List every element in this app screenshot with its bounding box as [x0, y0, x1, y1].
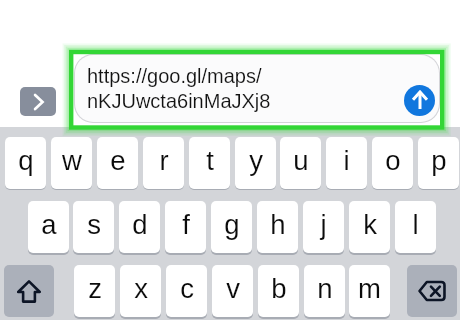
- staticText: n: [317, 273, 333, 304]
- staticText: s: [87, 209, 101, 240]
- staticText: d: [132, 209, 148, 240]
- staticText: i: [343, 145, 350, 176]
- button[interactable]: y: [235, 137, 276, 189]
- staticText: q: [18, 145, 34, 176]
- staticText: v: [226, 273, 240, 304]
- staticText: f: [182, 209, 190, 240]
- button[interactable]: r: [143, 137, 184, 189]
- button[interactable]: j: [303, 201, 344, 253]
- button[interactable]: o: [372, 137, 413, 189]
- staticText: e: [110, 145, 126, 176]
- staticText: k: [363, 209, 377, 240]
- button[interactable]: h: [257, 201, 298, 253]
- button[interactable]: g: [211, 201, 252, 253]
- button[interactable]: a: [28, 201, 69, 253]
- staticText: https://goo.gl/maps/ nKJUwcta6inMaJXj8: [87, 65, 271, 113]
- button[interactable]: z: [74, 265, 115, 317]
- button[interactable]: q: [5, 137, 46, 189]
- staticText: a: [41, 209, 57, 240]
- staticText: h: [270, 209, 286, 240]
- button[interactable]: s: [73, 201, 114, 253]
- button[interactable]: e: [97, 137, 138, 189]
- staticText: l: [412, 209, 419, 240]
- button[interactable]: x: [120, 265, 161, 317]
- staticText: u: [293, 145, 309, 176]
- staticText: m: [358, 273, 381, 304]
- staticText: c: [180, 273, 194, 304]
- staticText: w: [62, 145, 82, 176]
- button[interactable]: l: [395, 201, 436, 253]
- button[interactable]: n: [304, 265, 345, 317]
- button[interactable]: f: [165, 201, 206, 253]
- button[interactable]: m: [349, 265, 390, 317]
- staticText: j: [320, 209, 327, 240]
- staticText: z: [88, 273, 102, 304]
- staticText: x: [134, 273, 148, 304]
- button[interactable]: b: [258, 265, 299, 317]
- button[interactable]: p: [418, 137, 459, 189]
- button[interactable]: d: [119, 201, 160, 253]
- staticText: r: [159, 145, 169, 176]
- button[interactable]: c: [166, 265, 207, 317]
- button[interactable]: Backspace: [407, 265, 457, 317]
- button[interactable]: k: [349, 201, 390, 253]
- staticText: g: [224, 209, 240, 240]
- button[interactable]: v: [212, 265, 253, 317]
- button[interactable]: Expand: [20, 87, 56, 116]
- button[interactable]: Send: [404, 85, 435, 116]
- button[interactable]: w: [51, 137, 92, 189]
- staticText: o: [385, 145, 401, 176]
- button[interactable]: t: [189, 137, 230, 189]
- button[interactable]: u: [280, 137, 321, 189]
- button[interactable]: i: [326, 137, 367, 189]
- staticText: t: [206, 145, 214, 176]
- staticText: b: [271, 273, 287, 304]
- staticText: p: [431, 145, 447, 176]
- button[interactable]: Shift: [4, 265, 54, 317]
- staticText: y: [249, 145, 263, 176]
